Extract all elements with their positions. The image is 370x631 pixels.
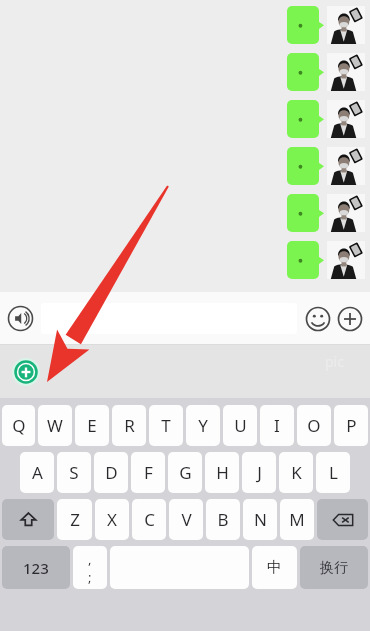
button[interactable]: Q: [2, 405, 35, 446]
staticText: G: [179, 461, 192, 484]
button[interactable]: U: [223, 405, 257, 446]
staticText: E: [87, 414, 97, 437]
button[interactable]: Contact avatar: [327, 6, 365, 44]
staticText: F: [144, 461, 153, 484]
button[interactable]: D: [94, 452, 128, 493]
staticText: C: [144, 508, 155, 531]
button[interactable]: Contact avatar: [0, 53, 370, 91]
staticText: ,: [88, 550, 92, 568]
button[interactable]: Contact avatar: [0, 6, 370, 44]
staticText: ;: [88, 568, 92, 586]
button[interactable]: Emoji: [305, 306, 331, 332]
button[interactable]: Contact avatar: [327, 194, 365, 232]
staticText: O: [307, 414, 321, 437]
button[interactable]: O: [297, 405, 331, 446]
staticText: L: [329, 461, 338, 484]
button[interactable]: C: [132, 499, 166, 540]
button[interactable]: H: [205, 452, 239, 493]
staticText: N: [254, 508, 267, 531]
staticText: 中: [267, 558, 282, 577]
button[interactable]: Assistant shortcut: [12, 358, 40, 386]
button[interactable]: W: [38, 405, 72, 446]
button[interactable]: 换行: [300, 546, 368, 589]
button[interactable]: P: [334, 405, 368, 446]
button[interactable]: I: [260, 405, 294, 446]
staticText: M: [289, 508, 305, 531]
staticText: I: [274, 414, 280, 437]
button[interactable]: N: [243, 499, 277, 540]
staticText: P: [346, 414, 357, 437]
staticText: D: [105, 461, 118, 484]
staticText: K: [291, 461, 302, 484]
button[interactable]: B: [206, 499, 240, 540]
button[interactable]: Contact avatar: [0, 194, 370, 232]
button[interactable]: Contact avatar: [327, 53, 365, 91]
staticText: Q: [12, 414, 26, 437]
button[interactable]: S: [57, 452, 91, 493]
button[interactable]: Contact avatar: [327, 100, 365, 138]
button[interactable]: Contact avatar: [0, 241, 370, 279]
staticText: Z: [70, 508, 80, 531]
staticText: R: [124, 414, 135, 437]
button[interactable]: Shift: [2, 499, 54, 540]
button[interactable]: More options: [337, 306, 363, 332]
staticText: J: [257, 461, 262, 484]
staticText: H: [216, 461, 229, 484]
button[interactable]: E: [75, 405, 109, 446]
staticText: V: [181, 508, 192, 531]
button[interactable]: Comma and semicolon: [73, 546, 107, 589]
button[interactable]: Message input: [41, 303, 297, 334]
button[interactable]: R: [112, 405, 146, 446]
button[interactable]: Y: [186, 405, 220, 446]
button[interactable]: Z: [57, 499, 92, 540]
button[interactable]: 123: [2, 546, 70, 589]
button[interactable]: M: [280, 499, 314, 540]
button[interactable]: L: [316, 452, 350, 493]
button[interactable]: J: [242, 452, 276, 493]
button[interactable]: T: [149, 405, 183, 446]
button[interactable]: Contact avatar: [0, 147, 370, 185]
button[interactable]: Contact avatar: [327, 147, 365, 185]
staticText: S: [69, 461, 79, 484]
staticText: U: [234, 414, 247, 437]
button[interactable]: G: [168, 452, 202, 493]
button[interactable]: F: [131, 452, 165, 493]
button[interactable]: X: [95, 499, 129, 540]
button[interactable]: A: [20, 452, 54, 493]
button[interactable]: K: [279, 452, 313, 493]
staticText: A: [32, 461, 43, 484]
button[interactable]: Switch language: [252, 546, 297, 589]
staticText: Y: [198, 414, 208, 437]
button[interactable]: Backspace: [317, 499, 368, 540]
staticText: W: [47, 414, 63, 437]
button[interactable]: Contact avatar: [0, 100, 370, 138]
staticText: 123: [23, 558, 49, 578]
button[interactable]: Contact avatar: [327, 241, 365, 279]
button[interactable]: Voice input: [7, 305, 34, 332]
staticText: 换行: [320, 559, 348, 577]
button[interactable]: V: [169, 499, 203, 540]
staticText: B: [217, 508, 229, 531]
staticText: T: [161, 414, 171, 437]
staticText: X: [107, 508, 117, 531]
